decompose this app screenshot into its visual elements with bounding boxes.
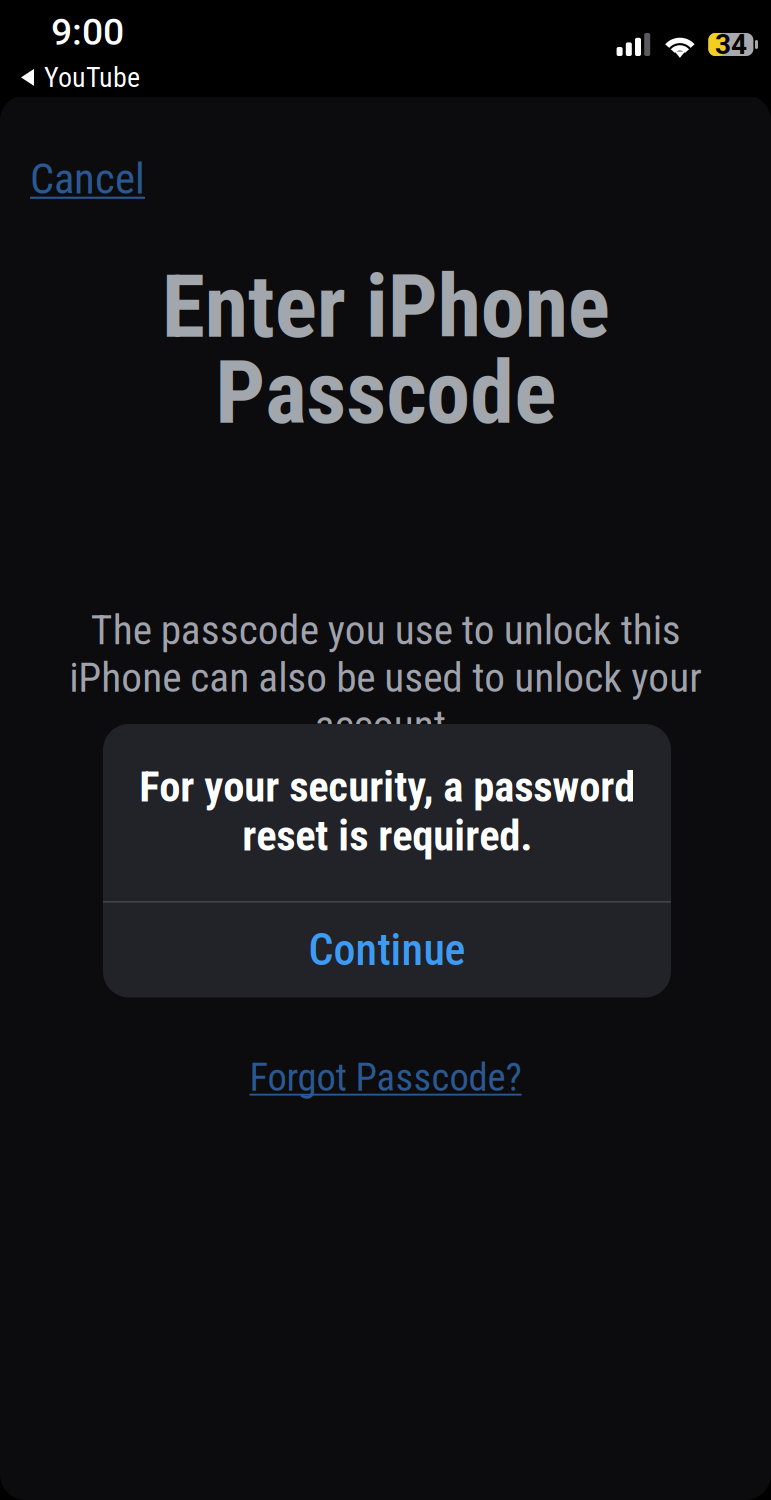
button[interactable]: Cancel <box>24 145 151 213</box>
button[interactable]: YouTube <box>0 60 154 95</box>
staticText: 9:00 <box>51 10 124 54</box>
staticText: Forgot Passcode? <box>249 1055 521 1100</box>
button[interactable]: Forgot Passcode? <box>239 1047 531 1108</box>
staticText: For your security, a password reset is r… <box>139 762 635 861</box>
staticText: 34 <box>715 28 747 61</box>
staticText: Cancel <box>30 154 145 204</box>
button[interactable]: Continue <box>103 902 671 997</box>
staticText: YouTube <box>44 61 140 94</box>
staticText: The passcode you use to unlock this iPho… <box>69 606 702 749</box>
staticText: Enter iPhone Passcode <box>161 255 609 444</box>
staticText: Continue <box>308 924 465 976</box>
